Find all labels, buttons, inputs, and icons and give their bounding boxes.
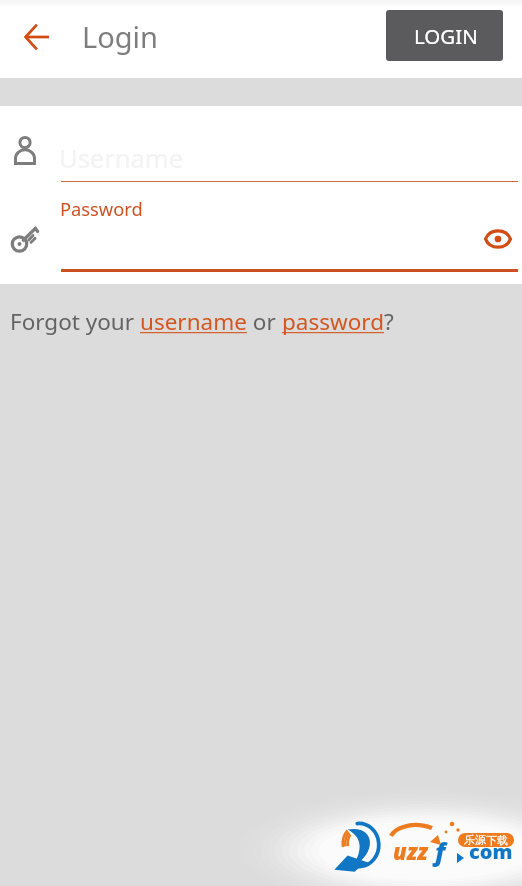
staticText: username — [140, 306, 247, 337]
staticText: ? — [384, 306, 394, 337]
button[interactable]: Show password — [478, 219, 518, 259]
button[interactable]: Back — [13, 13, 61, 61]
staticText: Username — [59, 141, 184, 176]
button[interactable]: password — [282, 306, 384, 337]
staticText: f — [435, 834, 446, 868]
staticText: com — [469, 838, 513, 865]
staticText: LOGIN — [414, 22, 478, 50]
button[interactable]: username — [140, 306, 247, 337]
staticText: 乐源下载 — [464, 833, 508, 847]
staticText: password — [282, 306, 384, 337]
staticText: Password — [60, 196, 143, 221]
button[interactable]: Password — [0, 190, 522, 269]
staticText: uzz — [393, 836, 429, 866]
staticText: Forgot your — [10, 306, 140, 337]
staticText: or — [247, 306, 282, 337]
button[interactable]: Username — [0, 120, 522, 182]
staticText: Login — [82, 17, 158, 56]
button[interactable]: LOGIN — [386, 10, 503, 61]
